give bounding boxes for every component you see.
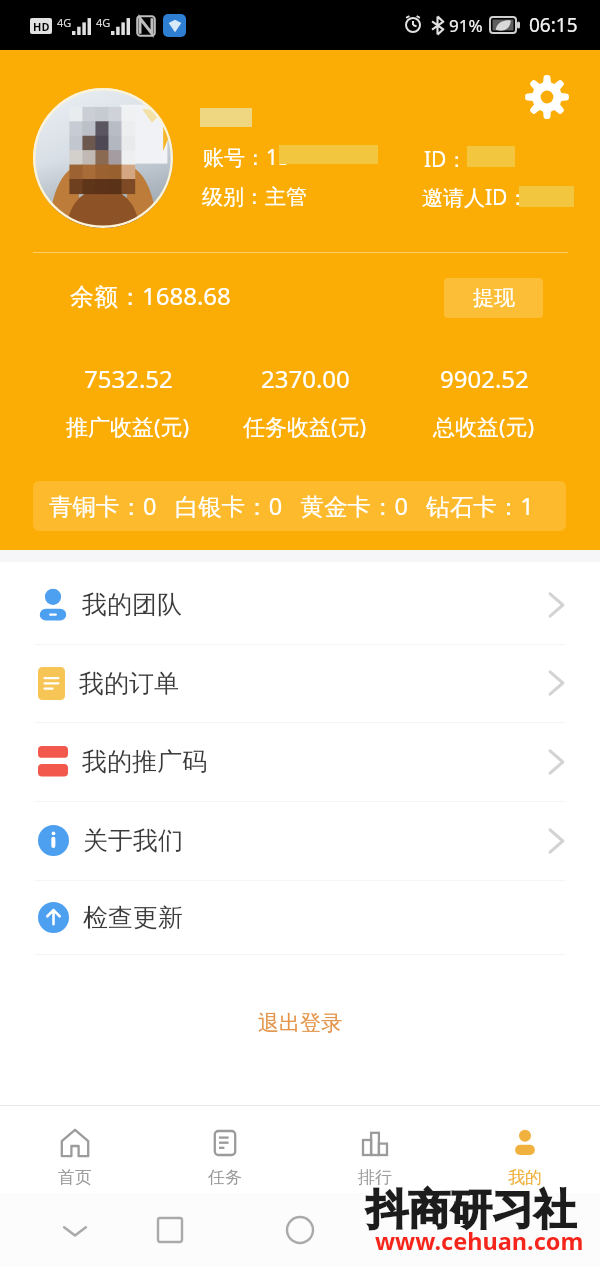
button[interactable]: 我的团队 <box>0 565 600 644</box>
staticText: 06:15 <box>529 12 578 38</box>
button[interactable]: 关于我们 <box>0 801 600 880</box>
staticText: 级别：主管 <box>202 184 307 210</box>
staticText: 我的 <box>508 1167 542 1188</box>
staticText: 关于我们 <box>83 825 183 856</box>
button[interactable]: Back <box>58 1213 92 1247</box>
button[interactable]: 检查更新 <box>0 880 600 954</box>
staticText: 4G <box>96 15 111 30</box>
staticText: 青铜卡：0 白银卡：0 黄金卡：0 钻石卡：1 <box>49 490 534 522</box>
staticText: 任务收益(元) <box>243 411 367 441</box>
button[interactable]: Profile photo <box>33 88 173 228</box>
button[interactable]: 首页 <box>0 1105 150 1193</box>
staticText: 总收益(元) <box>433 411 535 441</box>
staticText: 91% <box>449 14 483 37</box>
staticText: 我的推广码 <box>82 746 207 777</box>
staticText: 我的团队 <box>82 589 182 620</box>
staticText: 4G <box>57 15 72 30</box>
staticText: 余额：1688.68 <box>70 279 231 312</box>
staticText: 提现 <box>473 285 515 311</box>
staticText: 推广收益(元) <box>66 411 190 441</box>
staticText: 2370.00 <box>261 362 350 395</box>
button[interactable]: 我的 <box>450 1105 600 1193</box>
staticText: 任务 <box>208 1167 242 1188</box>
staticText: 检查更新 <box>83 902 183 933</box>
button[interactable]: 任务 <box>150 1105 300 1193</box>
staticText: www.cehuan.com <box>375 1225 584 1257</box>
button[interactable]: 排行 <box>300 1105 450 1193</box>
staticText: HD <box>33 19 50 34</box>
staticText: 退出登录 <box>258 1010 342 1036</box>
staticText: 我的订单 <box>79 668 179 699</box>
button[interactable]: 我的订单 <box>0 644 600 722</box>
button[interactable]: Settings <box>524 74 570 120</box>
staticText: 7532.52 <box>84 362 173 395</box>
staticText: 9902.52 <box>440 362 529 395</box>
button[interactable]: 青铜卡：0 白银卡：0 黄金卡：0 钻石卡：1 <box>33 481 566 531</box>
staticText: 账号：15 <box>203 143 291 172</box>
staticText: 邀请人ID： <box>422 183 529 212</box>
button[interactable]: 我的推广码 <box>0 722 600 801</box>
button[interactable]: Home <box>154 1214 186 1246</box>
button[interactable]: Recent apps <box>284 1214 316 1246</box>
staticText: 抖商研习社 <box>366 1184 576 1237</box>
staticText: 排行 <box>358 1167 392 1188</box>
staticText: ID： <box>424 145 468 174</box>
staticText: 首页 <box>58 1167 92 1188</box>
button[interactable]: 提现 <box>444 278 543 318</box>
button[interactable]: 退出登录 <box>0 995 600 1051</box>
